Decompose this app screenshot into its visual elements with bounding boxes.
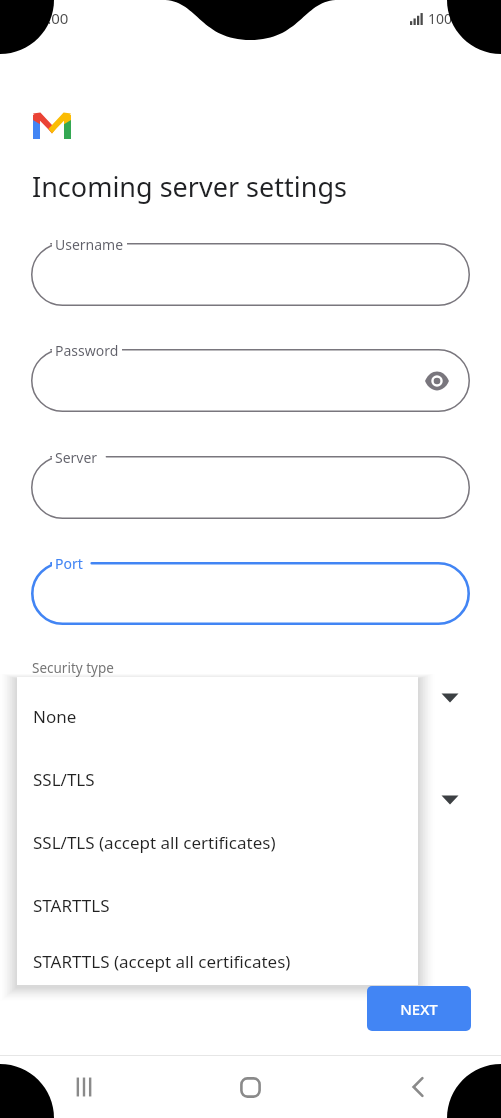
staticText: Server [55,448,98,467]
button[interactable]: Open dropdown [440,690,460,706]
button[interactable]: None [17,685,418,748]
button[interactable]: Show password [420,364,454,398]
staticText: 100% [428,9,464,28]
button[interactable]: Recent apps [0,1056,167,1118]
staticText: NEXT [400,999,438,1019]
button[interactable]: SSL/TLS (accept all certificates) [17,811,418,874]
staticText: Port [55,554,83,573]
button[interactable]: NEXT [367,986,471,1031]
staticText: STARTTLS (accept all certificates) [33,950,291,973]
button[interactable]: STARTTLS (accept all certificates) [17,937,418,985]
staticText: None [33,705,77,728]
staticText: Password [55,341,119,360]
staticText: Incoming server settings [32,168,347,205]
button[interactable]: Open dropdown [440,792,460,808]
staticText: SSL/TLS [33,768,95,791]
staticText: 10:00 [30,8,69,28]
button[interactable]: STARTTLS [17,874,418,937]
button[interactable]: Username [31,243,470,306]
staticText: STARTTLS [33,894,110,917]
staticText: Username [55,235,124,254]
button[interactable]: SSL/TLS [17,748,418,811]
staticText: SSL/TLS (accept all certificates) [33,831,276,854]
button[interactable]: Port [31,562,470,625]
button[interactable]: Back [334,1056,501,1118]
button[interactable]: Home [167,1056,334,1118]
button[interactable]: Server [31,456,470,519]
button[interactable]: Password [31,349,470,412]
staticText: Security type [32,659,114,677]
